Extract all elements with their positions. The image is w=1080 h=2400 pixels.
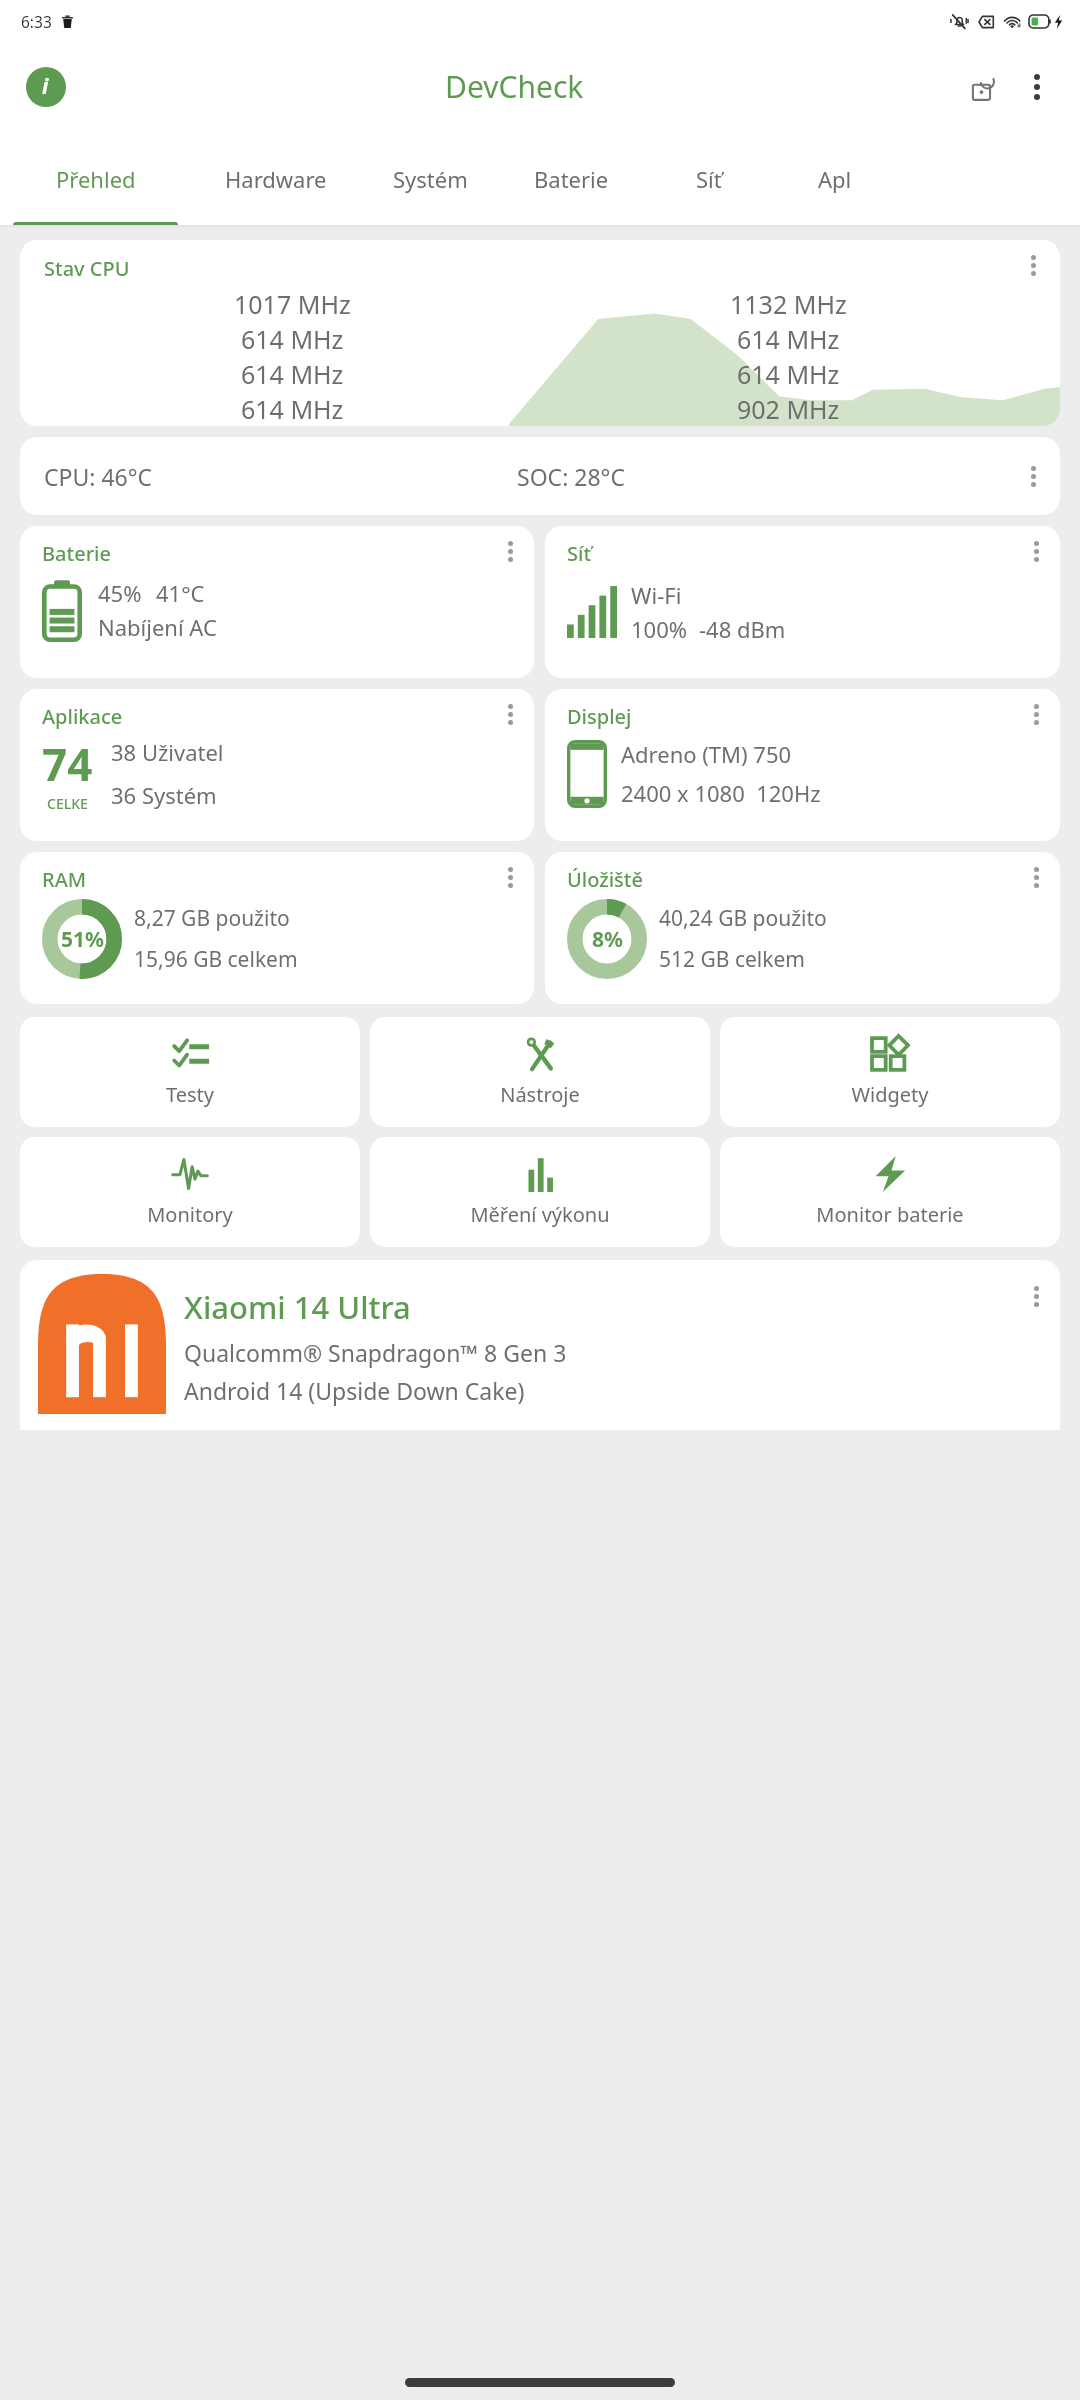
staticText: 1017 MHz [234, 287, 351, 321]
staticText: Qualcomm® Snapdragon™ 8 Gen 3 [184, 1337, 567, 1368]
staticText: 614 MHz [241, 357, 344, 391]
staticText: Nabíjení AC [98, 612, 217, 642]
button[interactable]: RAM [20, 852, 534, 1004]
button[interactable]: Úložiště [545, 852, 1060, 1004]
button[interactable]: Měření výkonu [370, 1137, 710, 1247]
button[interactable]: Info [22, 63, 69, 110]
button[interactable]: Systém [361, 130, 500, 227]
staticText: Měření výkonu [470, 1201, 610, 1228]
button[interactable]: Card menu [1018, 859, 1054, 895]
staticText: Adreno (TM) 750 [621, 739, 792, 769]
staticText: Widgety [851, 1081, 929, 1108]
staticText: 74 [42, 734, 93, 794]
staticText: RAM [42, 866, 87, 893]
button[interactable]: Apl [775, 130, 895, 227]
staticText: 100% [631, 614, 688, 644]
staticText: 15,96 GB celkem [134, 945, 298, 974]
staticText: 8% [592, 925, 623, 954]
staticText: 614 MHz [241, 322, 344, 356]
staticText: DevCheck [445, 66, 584, 107]
staticText: 614 MHz [241, 392, 344, 426]
button[interactable]: Card menu [1018, 696, 1054, 732]
staticText: SOC: 28°C [517, 461, 625, 492]
staticText: 2400 x 1080 120Hz [621, 778, 821, 808]
staticText: Baterie [42, 540, 111, 567]
staticText: 614 MHz [737, 322, 840, 356]
staticText: -48 dBm [699, 614, 786, 644]
button[interactable]: Card menu [1015, 247, 1051, 283]
button[interactable]: Card menu [1018, 1278, 1054, 1314]
staticText: 41°C [156, 578, 205, 608]
staticText: 6:33 [21, 11, 52, 32]
staticText: 40,24 GB použito [659, 904, 827, 933]
button[interactable]: Síť [642, 130, 775, 227]
button[interactable]: Hardware [191, 130, 361, 227]
button[interactable]: Aplikace [20, 689, 534, 841]
staticText: 45% [98, 578, 142, 608]
button[interactable]: Card menu [492, 533, 528, 569]
staticText: Wi-Fi [631, 580, 682, 610]
staticText: Síť [696, 164, 722, 194]
button[interactable]: Unlock [960, 64, 1006, 110]
staticText: Monitory [147, 1201, 233, 1228]
staticText: 36 Systém [111, 780, 217, 810]
button[interactable]: Displej [545, 689, 1060, 841]
button[interactable]: Nástroje [370, 1017, 710, 1127]
button[interactable]: Card menu [492, 696, 528, 732]
staticText: Monitor baterie [816, 1201, 964, 1228]
staticText: Android 14 (Upside Down Cake) [184, 1375, 525, 1406]
staticText: 614 MHz [737, 357, 840, 391]
button[interactable]: Card menu [492, 859, 528, 895]
staticText: i [42, 72, 49, 101]
staticText: Systém [393, 164, 468, 194]
button[interactable]: Baterie [500, 130, 642, 227]
staticText: Testy [166, 1081, 214, 1108]
button[interactable]: Baterie [20, 526, 534, 678]
button[interactable]: Testy [20, 1017, 360, 1127]
staticText: 38 Uživatel [111, 737, 224, 767]
button[interactable]: Monitor baterie [720, 1137, 1060, 1247]
staticText: Xiaomi 14 Ultra [184, 1286, 411, 1328]
button[interactable]: Přehled [0, 130, 191, 227]
staticText: Síť [567, 540, 592, 567]
staticText: 1132 MHz [730, 287, 847, 321]
staticText: 902 MHz [737, 392, 840, 426]
staticText: Displej [567, 703, 632, 730]
button[interactable]: More options [1016, 66, 1058, 108]
button[interactable]: Monitory [20, 1137, 360, 1247]
staticText: Nástroje [500, 1081, 580, 1108]
button[interactable]: Widgety [720, 1017, 1060, 1127]
button[interactable]: Síť [545, 526, 1060, 678]
button[interactable]: Card menu [1018, 533, 1054, 569]
staticText: CELKE [47, 794, 88, 813]
staticText: CPU: 46°C [44, 461, 153, 492]
button[interactable]: Xiaomi 14 Ultra [20, 1260, 1060, 1430]
staticText: Přehled [56, 164, 136, 194]
button[interactable]: CPU: 46°C [20, 437, 1060, 515]
staticText: Baterie [534, 164, 609, 194]
staticText: 8,27 GB použito [134, 904, 290, 933]
staticText: 512 GB celkem [659, 945, 805, 974]
button[interactable]: Card menu [1015, 458, 1051, 494]
staticText: Úložiště [567, 866, 643, 893]
staticText: Apl [818, 164, 852, 194]
staticText: Stav CPU [44, 255, 130, 282]
staticText: Hardware [225, 164, 327, 194]
staticText: 51% [61, 925, 104, 954]
staticText: Aplikace [42, 703, 123, 730]
button[interactable]: Stav CPU [20, 240, 1060, 426]
